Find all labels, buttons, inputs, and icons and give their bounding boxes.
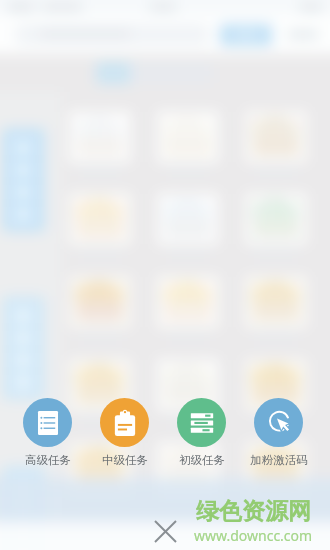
button[interactable]: 加粉激活码 (240, 398, 317, 472)
staticText: 中级任务 (102, 453, 148, 467)
button[interactable]: 中级任务 (86, 398, 163, 472)
staticText: 高级任务 (25, 453, 71, 467)
button[interactable]: 初级任务 (163, 398, 240, 472)
staticText: 初级任务 (179, 453, 225, 467)
staticText: www.downcc.com (194, 526, 313, 545)
staticText: 加粉激活码 (250, 453, 308, 467)
button[interactable]: 高级任务 (9, 398, 86, 472)
button[interactable]: Close (146, 512, 184, 550)
staticText: 绿色资源网 (196, 497, 311, 526)
